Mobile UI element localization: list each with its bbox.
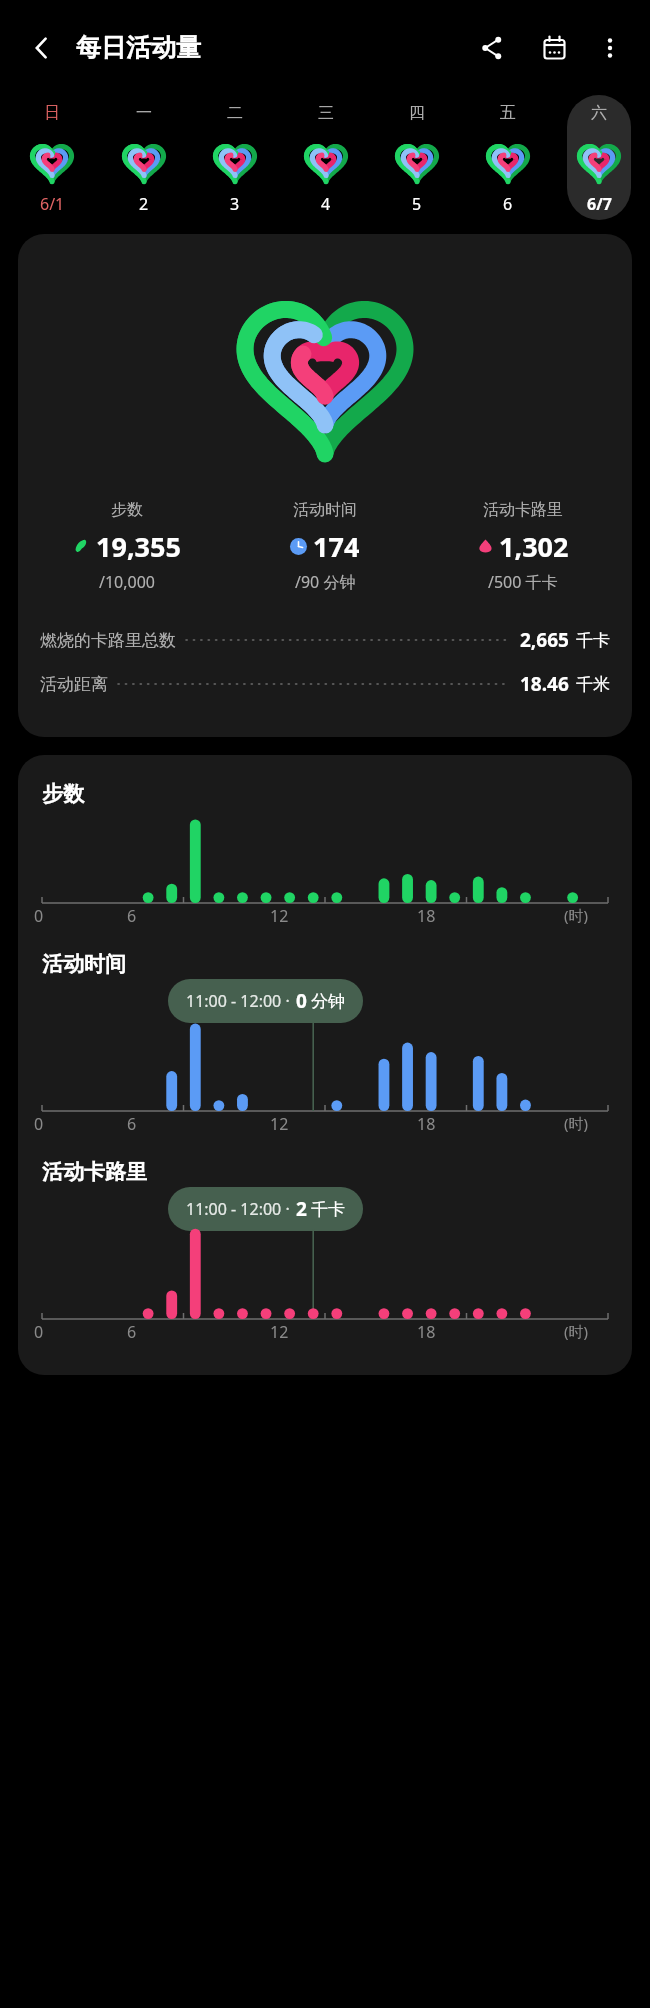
button[interactable]: 日 bbox=[6, 95, 98, 220]
staticText: 燃烧的卡路里总数 bbox=[40, 630, 176, 651]
staticText: 五 bbox=[500, 103, 516, 123]
button[interactable]: 步数 bbox=[28, 500, 226, 593]
staticText: 11:00 - 12:00 · bbox=[186, 1198, 290, 1220]
staticText: 6/1 bbox=[40, 193, 65, 215]
staticText: 2 bbox=[139, 193, 149, 215]
button[interactable]: 二 bbox=[189, 95, 280, 220]
staticText: 12 bbox=[270, 1321, 289, 1343]
staticText: 二 bbox=[227, 103, 243, 123]
staticText: 0 bbox=[34, 905, 44, 927]
staticText: (时) bbox=[564, 1321, 589, 1341]
staticText: 活动卡路里 bbox=[42, 1159, 147, 1185]
staticText: 一 bbox=[136, 103, 152, 123]
button[interactable]: 燃烧的卡路里总数 bbox=[40, 627, 610, 653]
staticText: 5 bbox=[412, 193, 422, 215]
staticText: 四 bbox=[409, 103, 425, 123]
staticText: 6 bbox=[127, 1321, 137, 1343]
staticText: 活动卡路里 bbox=[483, 500, 563, 520]
staticText: 6 bbox=[503, 193, 513, 215]
staticText: 活动时间 bbox=[42, 951, 126, 977]
button[interactable]: Back bbox=[18, 24, 66, 72]
button[interactable]: 一 bbox=[98, 95, 189, 220]
button[interactable]: More options bbox=[588, 26, 632, 70]
staticText: 步数 bbox=[111, 500, 143, 520]
staticText: 千卡 bbox=[576, 630, 610, 651]
staticText: 三 bbox=[318, 103, 334, 123]
staticText: 11:00 - 12:00 · bbox=[186, 990, 290, 1012]
staticText: 174 bbox=[313, 528, 360, 565]
button[interactable]: 活动时间 bbox=[226, 500, 424, 593]
button[interactable]: 活动卡路里 bbox=[424, 500, 622, 593]
staticText: /500 千卡 bbox=[488, 571, 558, 593]
staticText: 18 bbox=[417, 1113, 436, 1135]
staticText: 千米 bbox=[576, 674, 610, 695]
staticText: 12 bbox=[270, 1113, 289, 1135]
staticText: 六 bbox=[591, 103, 607, 123]
staticText: 4 bbox=[321, 193, 331, 215]
staticText: /10,000 bbox=[99, 571, 156, 593]
staticText: 2 bbox=[296, 1196, 307, 1222]
staticText: /90 分钟 bbox=[295, 571, 356, 593]
staticText: 活动距离 bbox=[40, 674, 108, 695]
staticText: 12 bbox=[270, 905, 289, 927]
staticText: (时) bbox=[564, 1113, 589, 1133]
staticText: 每日活动量 bbox=[76, 32, 201, 63]
staticText: 步数 bbox=[42, 781, 84, 807]
staticText: 0 bbox=[34, 1321, 44, 1343]
staticText: 18.46 bbox=[520, 671, 569, 697]
staticText: 2,665 bbox=[520, 627, 569, 653]
staticText: 6 bbox=[127, 905, 137, 927]
staticText: 18 bbox=[417, 1321, 436, 1343]
staticText: 6 bbox=[127, 1113, 137, 1135]
button[interactable]: Calendar bbox=[530, 24, 578, 72]
button[interactable]: 五 bbox=[462, 95, 553, 220]
button[interactable]: 步数 bbox=[18, 234, 632, 737]
staticText: 3 bbox=[230, 193, 240, 215]
staticText: 1,302 bbox=[499, 528, 569, 565]
staticText: 日 bbox=[44, 103, 60, 123]
staticText: 18 bbox=[417, 905, 436, 927]
staticText: 分钟 bbox=[311, 991, 345, 1012]
staticText: 0 bbox=[34, 1113, 44, 1135]
button[interactable]: 四 bbox=[371, 95, 462, 220]
staticText: (时) bbox=[564, 905, 589, 925]
button[interactable]: 六 bbox=[553, 95, 644, 220]
button[interactable]: Share bbox=[468, 24, 516, 72]
button[interactable]: 三 bbox=[280, 95, 371, 220]
staticText: 千卡 bbox=[311, 1199, 345, 1220]
staticText: 活动时间 bbox=[293, 500, 357, 520]
staticText: 0 bbox=[296, 988, 307, 1014]
staticText: 19,355 bbox=[96, 528, 181, 565]
staticText: 6/7 bbox=[587, 193, 612, 215]
button[interactable]: 活动距离 bbox=[40, 671, 610, 697]
